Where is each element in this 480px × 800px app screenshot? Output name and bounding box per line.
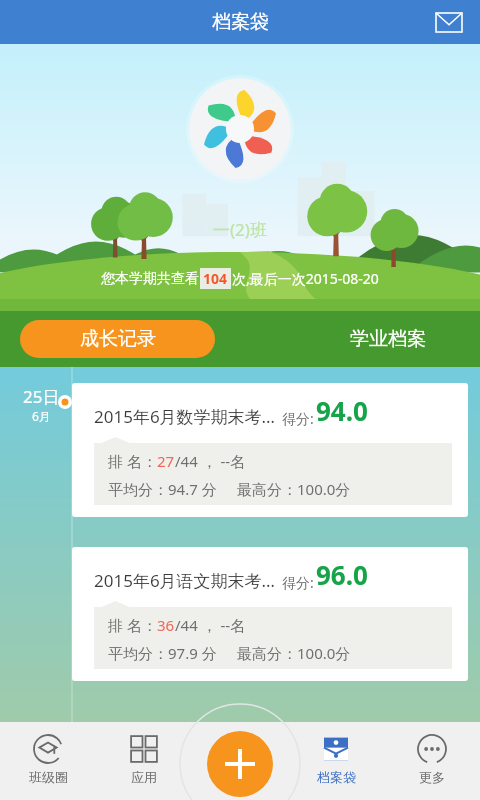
staticText: 25日 xyxy=(23,385,60,408)
staticText: 次,最后一次2015-08-20 xyxy=(232,269,379,288)
staticText: 得分: xyxy=(282,573,314,592)
button[interactable]: Messages xyxy=(432,5,466,39)
button[interactable]: 应用 xyxy=(96,722,192,800)
staticText: 您本学期共查看 xyxy=(101,270,199,288)
staticText: 36 xyxy=(157,615,175,635)
staticText: 平均分：97.9 分 xyxy=(108,643,217,663)
button[interactable]: 班级圈 xyxy=(0,722,96,800)
staticText: 最高分：100.0分 xyxy=(237,643,351,663)
staticText: 排 名： xyxy=(108,615,157,635)
button[interactable]: 档案袋 xyxy=(288,722,384,800)
staticText: 96.0 xyxy=(316,557,368,592)
button[interactable]: 2015年6月语文期末考… xyxy=(72,547,468,681)
staticText: 排 名： xyxy=(108,451,157,471)
staticText: 档案袋 xyxy=(212,10,269,34)
staticText: 得分: xyxy=(282,409,314,428)
staticText: 104 xyxy=(203,269,228,288)
staticText: 班级圈 xyxy=(29,769,68,785)
button[interactable]: Profile logo xyxy=(186,75,294,183)
staticText: 一(2)班 xyxy=(213,218,267,241)
button[interactable]: 2015年6月数学期末考… xyxy=(72,383,468,517)
staticText: /44 ， --名 xyxy=(175,615,246,635)
staticText: 27 xyxy=(157,451,175,471)
button[interactable]: 学业档案 xyxy=(338,319,438,359)
staticText: 更多 xyxy=(419,769,445,785)
staticText: 学业档案 xyxy=(350,327,426,351)
staticText: 最高分：100.0分 xyxy=(237,479,351,499)
staticText: 6月 xyxy=(32,408,51,424)
staticText: 应用 xyxy=(131,769,157,785)
button[interactable]: 更多 xyxy=(384,722,480,800)
staticText: 2015年6月语文期末考… xyxy=(94,569,276,592)
staticText: 94.0 xyxy=(316,393,368,428)
staticText: 档案袋 xyxy=(317,769,356,785)
staticText: /44 ， --名 xyxy=(175,451,246,471)
button[interactable]: 成长记录 xyxy=(20,320,215,358)
staticText: 平均分：94.7 分 xyxy=(108,479,217,499)
staticText: 成长记录 xyxy=(80,327,156,351)
button[interactable]: Add xyxy=(207,731,273,797)
staticText: 2015年6月数学期末考… xyxy=(94,405,276,428)
